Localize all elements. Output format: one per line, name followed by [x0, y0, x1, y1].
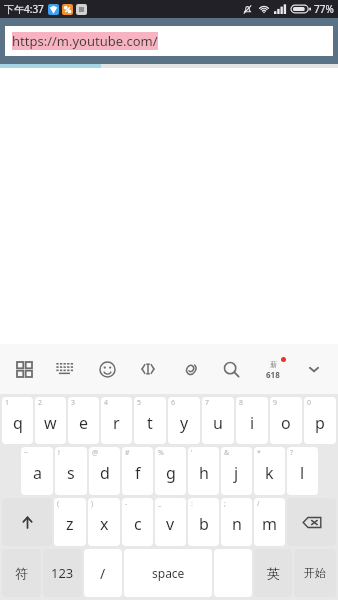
staticText: ?: [290, 448, 294, 458]
button[interactable]: Clipboard: [174, 353, 206, 385]
button[interactable]: 8: [236, 397, 268, 444]
staticText: @: [92, 448, 99, 458]
staticText: t: [147, 412, 153, 434]
button[interactable]: Keyboard layout: [49, 353, 81, 385]
button[interactable]: 7: [202, 397, 234, 444]
button[interactable]: &: [221, 447, 252, 495]
staticText: h: [199, 462, 209, 484]
button[interactable]: /: [254, 498, 285, 546]
button[interactable]: 6: [168, 397, 200, 444]
staticText: 7: [205, 398, 210, 408]
staticText: p: [315, 412, 325, 434]
staticText: b: [199, 513, 209, 535]
staticText: 618: [266, 369, 280, 380]
button[interactable]: :: [188, 498, 219, 546]
button[interactable]: ): [88, 498, 120, 546]
staticText: 开始: [304, 566, 326, 580]
staticText: u: [213, 412, 223, 434]
button[interactable]: Move cursor: [132, 353, 164, 385]
staticText: ): [91, 499, 94, 509]
staticText: x: [100, 513, 109, 535]
staticText: w: [44, 412, 57, 434]
staticText: m: [262, 513, 277, 535]
staticText: *: [257, 448, 261, 458]
button[interactable]: 618 promotion: [257, 353, 289, 385]
staticText: c: [134, 513, 142, 535]
button[interactable]: *: [254, 447, 285, 495]
staticText: 123: [51, 564, 74, 582]
staticText: &: [224, 448, 230, 458]
button[interactable]: Shift: [2, 498, 52, 546]
button[interactable]: _: [155, 498, 186, 546]
button[interactable]: 3: [68, 397, 99, 444]
button[interactable]: 2: [35, 397, 66, 444]
staticText: https://m.youtube.com/: [12, 32, 158, 50]
button[interactable]: ': [188, 447, 219, 495]
staticText: r: [113, 412, 120, 434]
staticText: ;: [224, 499, 226, 509]
button[interactable]: 1: [2, 397, 33, 444]
button[interactable]: Emoji: [91, 353, 123, 385]
button[interactable]: https://m.youtube.com/: [5, 26, 333, 56]
button[interactable]: 开始: [294, 549, 336, 597]
staticText: 薪: [270, 360, 277, 369]
staticText: :: [191, 499, 193, 509]
staticText: v: [166, 513, 175, 535]
staticText: i: [250, 412, 255, 434]
staticText: /: [100, 564, 106, 583]
staticText: %: [158, 448, 164, 458]
button[interactable]: ?: [287, 447, 318, 495]
staticText: l: [300, 462, 305, 484]
button[interactable]: Grid: [8, 353, 40, 385]
staticText: 8: [239, 398, 244, 408]
button[interactable]: @: [89, 447, 120, 495]
staticText: 下午4:37: [4, 2, 44, 16]
staticText: !: [58, 448, 60, 458]
button[interactable]: ;: [221, 498, 252, 546]
staticText: d: [100, 462, 110, 484]
button[interactable]: space: [124, 549, 212, 597]
button[interactable]: 5: [134, 397, 166, 444]
staticText: 1: [5, 398, 10, 408]
staticText: g: [166, 462, 176, 484]
staticText: (: [57, 499, 60, 509]
staticText: 4: [104, 398, 109, 408]
staticText: z: [66, 513, 74, 535]
staticText: 6: [171, 398, 176, 408]
button[interactable]: !: [55, 447, 87, 495]
button[interactable]: 123: [43, 549, 82, 597]
button[interactable]: -: [122, 498, 153, 546]
staticText: ~: [24, 448, 29, 458]
staticText: j: [234, 462, 239, 484]
button[interactable]: Search: [215, 353, 247, 385]
staticText: /: [257, 499, 260, 509]
button[interactable]: 0: [304, 397, 336, 444]
staticText: 2: [38, 398, 43, 408]
staticText: #: [125, 448, 130, 458]
button[interactable]: #: [122, 447, 153, 495]
staticText: a: [33, 462, 42, 484]
staticText: 英: [267, 565, 280, 581]
button[interactable]: 英: [254, 549, 292, 597]
staticText: e: [79, 412, 89, 434]
button[interactable]: /: [84, 549, 122, 597]
staticText: 3: [71, 398, 76, 408]
button[interactable]: 符: [2, 549, 41, 597]
staticText: f: [135, 462, 141, 484]
staticText: 5: [137, 398, 142, 408]
button[interactable]: Backspace: [287, 498, 336, 546]
staticText: 0: [307, 398, 312, 408]
staticText: 9: [273, 398, 278, 408]
button[interactable]: (: [54, 498, 86, 546]
button[interactable]: ~: [21, 447, 53, 495]
button[interactable]: 4: [101, 397, 132, 444]
staticText: 符: [15, 565, 28, 581]
button[interactable]: Hide keyboard: [298, 353, 330, 385]
staticText: -: [125, 499, 128, 509]
staticText: space: [152, 565, 185, 581]
staticText: _: [158, 499, 162, 509]
button[interactable]: 9: [270, 397, 302, 444]
button[interactable]: %: [155, 447, 186, 495]
staticText: k: [265, 462, 274, 484]
